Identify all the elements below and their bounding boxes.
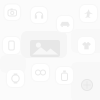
button[interactable]: Cars bbox=[55, 14, 74, 33]
button[interactable]: Cameras bbox=[3, 3, 21, 21]
button[interactable]: Eyewear bbox=[30, 62, 50, 82]
button[interactable]: Sports bbox=[81, 79, 92, 90]
button[interactable]: Clothing bbox=[76, 35, 96, 55]
button[interactable]: Beauty bbox=[54, 65, 74, 85]
button[interactable]: Audio bbox=[29, 5, 48, 24]
button[interactable]: Flights bbox=[78, 3, 98, 23]
button[interactable]: Watches bbox=[5, 68, 25, 88]
button[interactable]: Phones bbox=[1, 35, 21, 55]
